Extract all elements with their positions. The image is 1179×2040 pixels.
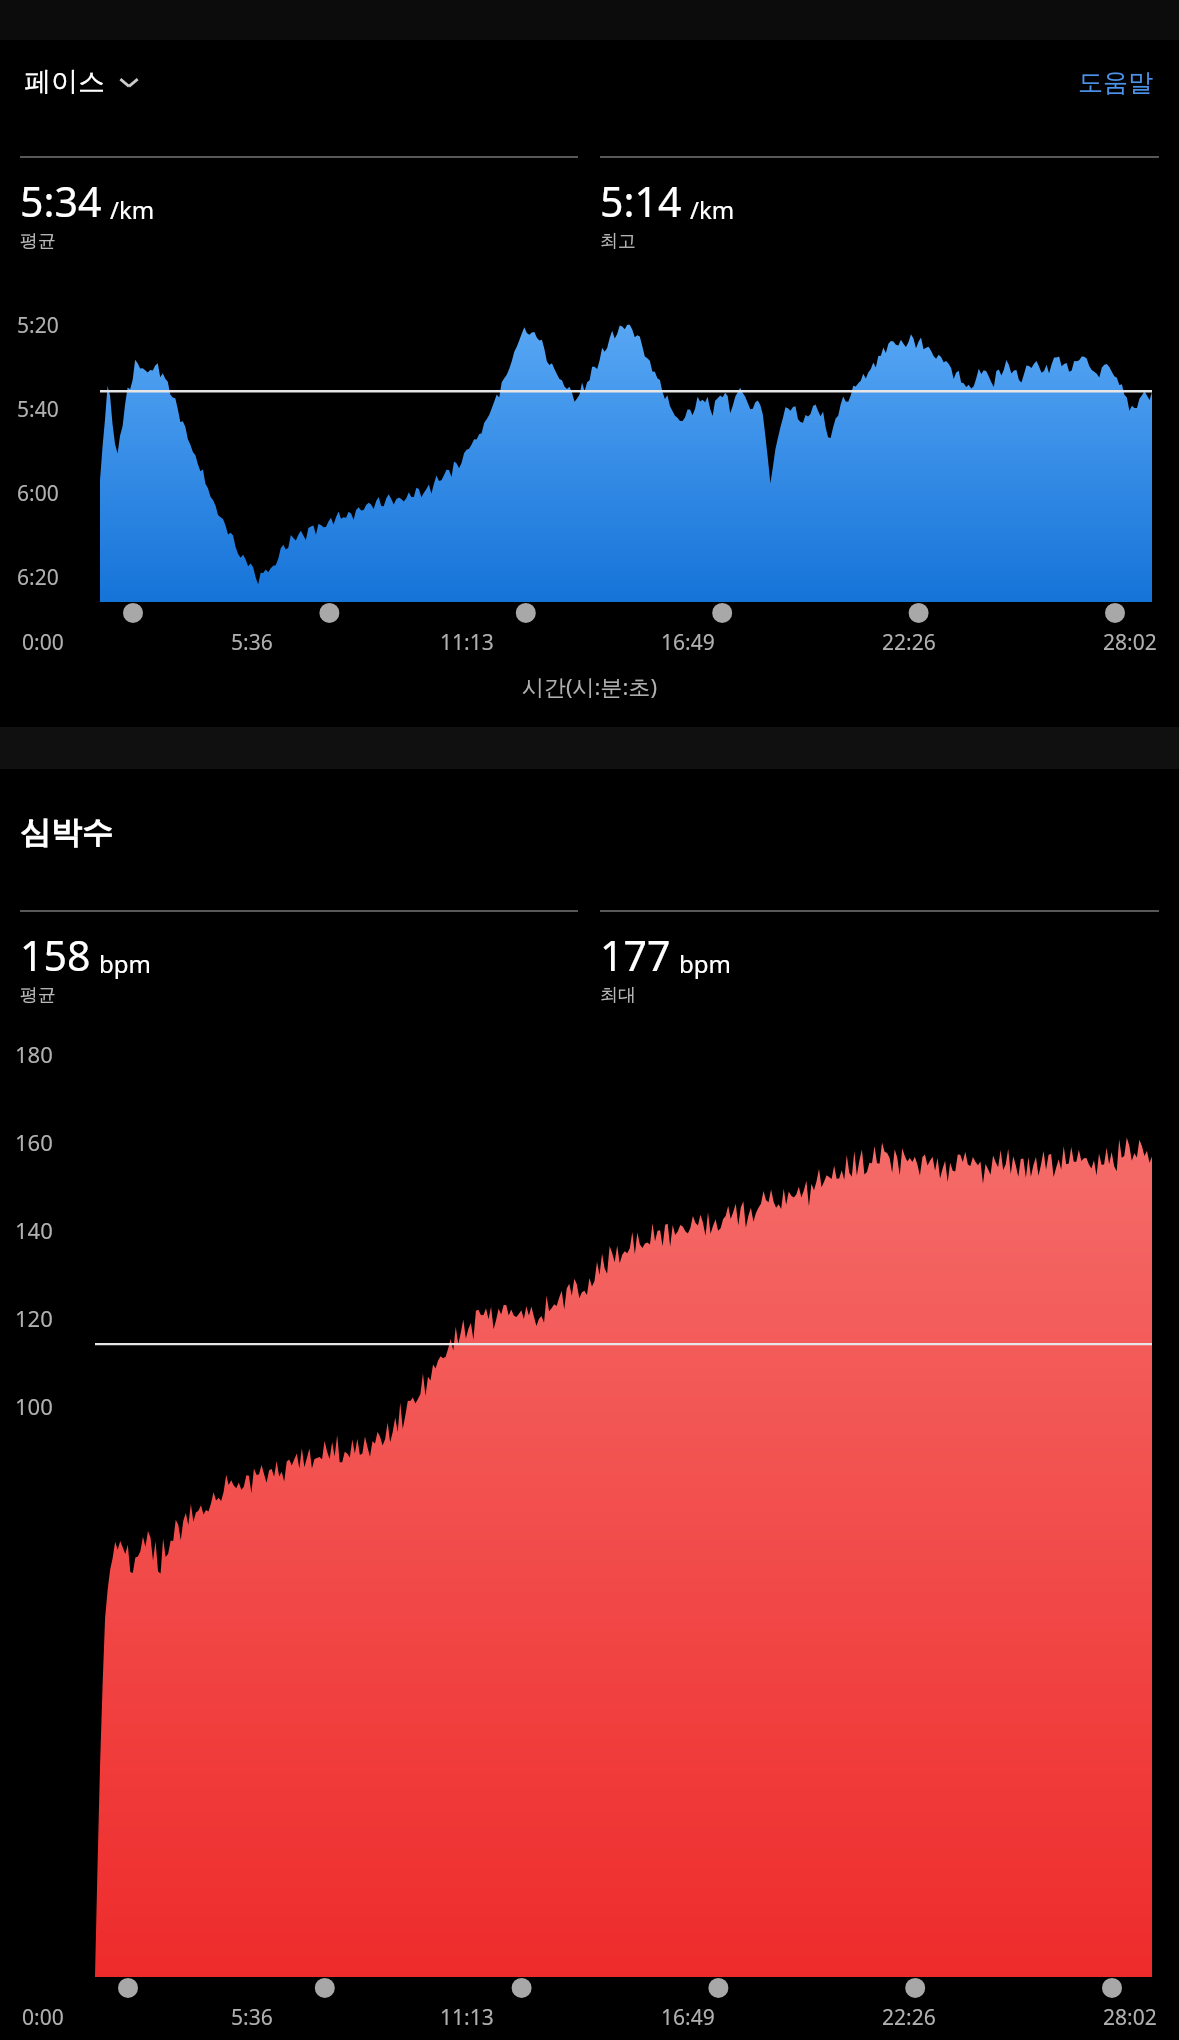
other: Change metric [117,70,141,94]
button[interactable]: 177 [600,910,1159,1007]
staticText: 28:02 [1103,628,1157,657]
staticText: 100 [15,1391,53,1421]
staticText: 도움말 [1078,67,1153,98]
staticText: 22:26 [882,2003,936,2032]
staticText: 심박수 [20,813,113,852]
staticText: 11:13 [440,628,494,657]
staticText: 120 [15,1303,53,1333]
staticText: /km [110,193,155,226]
staticText: 최고 [600,230,636,253]
staticText: 6:20 [17,563,59,592]
staticText: 177 [600,927,671,983]
staticText: 0:00 [22,628,64,657]
staticText: 페이스 [24,65,105,99]
button[interactable]: 5:14 [600,156,1159,253]
staticText: 11:13 [440,2003,494,2032]
staticText: 평균 [20,984,56,1007]
staticText: 5:34 [20,173,102,229]
staticText: 평균 [20,230,56,253]
button[interactable]: 5:34 [20,156,578,253]
staticText: 6:00 [17,479,59,508]
staticText: 5:40 [17,395,59,424]
staticText: 5:20 [17,311,59,340]
staticText: 0:00 [22,2003,64,2032]
staticText: /km [690,193,735,226]
staticText: bpm [679,947,731,980]
staticText: 5:14 [600,173,682,229]
button[interactable]: 158 [20,910,578,1007]
button[interactable]: 도움말 [1072,59,1159,106]
staticText: 5:36 [231,628,273,657]
staticText: 140 [15,1215,53,1245]
staticText: 16:49 [661,2003,715,2032]
staticText: 5:36 [231,2003,273,2032]
staticText: 16:49 [661,628,715,657]
staticText: bpm [99,947,151,980]
staticText: 158 [20,927,91,983]
button[interactable]: 페이스 [20,59,145,105]
staticText: 22:26 [882,628,936,657]
staticText: 시간(시:분:초) [522,671,657,701]
staticText: 180 [15,1039,53,1069]
staticText: 28:02 [1103,2003,1157,2032]
staticText: 160 [15,1127,53,1157]
staticText: 최대 [600,984,636,1007]
